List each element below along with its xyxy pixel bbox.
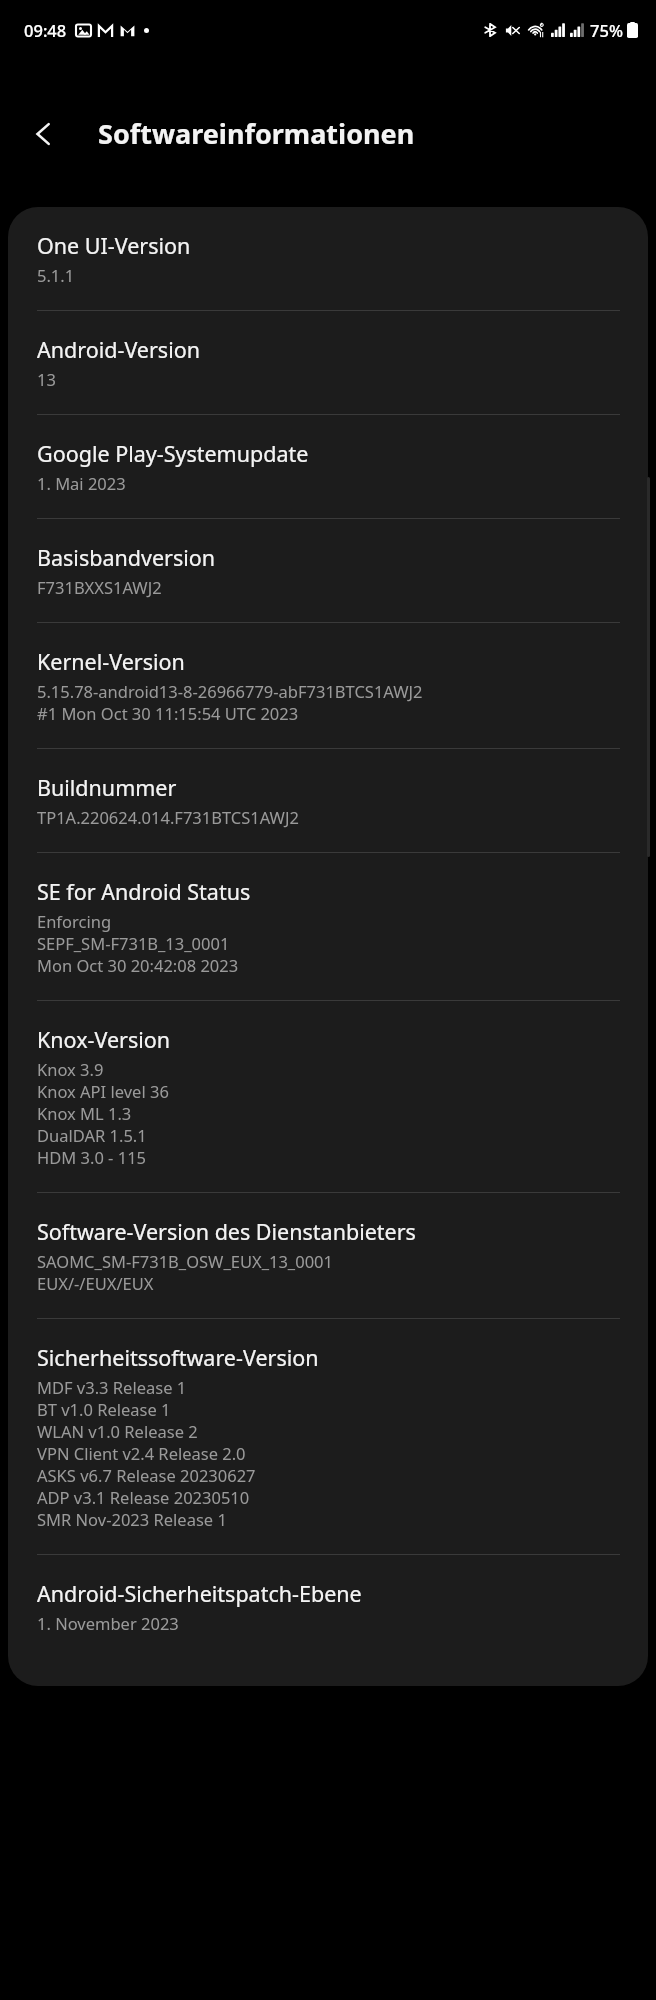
button[interactable]: Basisbandversion	[8, 519, 648, 622]
button[interactable]: Google Play-Systemupdate	[8, 415, 648, 518]
staticText: SE for Android Status	[37, 877, 251, 906]
button[interactable]: SE for Android Status	[8, 853, 648, 1000]
staticText: Buildnummer	[37, 773, 177, 802]
staticText: Sicherheitssoftware-Version	[37, 1343, 319, 1372]
button[interactable]: Kernel-Version	[8, 623, 648, 748]
button[interactable]: Android-Sicherheitspatch-Ebene	[8, 1555, 648, 1658]
staticText: Enforcing	[37, 910, 112, 932]
button[interactable]: Android-Version	[8, 311, 648, 414]
staticText: Knox 3.9	[37, 1058, 104, 1080]
staticText: MDF v3.3 Release 1	[37, 1376, 187, 1398]
button[interactable]: Knox-Version	[8, 1001, 648, 1192]
staticText: BT v1.0 Release 1	[37, 1398, 171, 1420]
staticText: DualDAR 1.5.1	[37, 1124, 147, 1146]
staticText: SMR Nov-2023 Release 1	[37, 1508, 227, 1530]
staticText: 5.15.78-android13-8-26966779-abF731BTCS1…	[37, 680, 423, 702]
staticText: Knox API level 36	[37, 1080, 169, 1102]
button[interactable]: Buildnummer	[8, 749, 648, 852]
staticText: One UI-Version	[37, 231, 191, 260]
staticText: 13	[37, 368, 56, 390]
staticText: Software-Version des Dienstanbieters	[37, 1217, 416, 1246]
staticText: VPN Client v2.4 Release 2.0	[37, 1442, 246, 1464]
staticText: EUX/-/EUX/EUX	[37, 1272, 154, 1294]
button[interactable]: Software-Version des Dienstanbieters	[8, 1193, 648, 1318]
staticText: Android-Sicherheitspatch-Ebene	[37, 1579, 362, 1608]
staticText: F731BXXS1AWJ2	[37, 576, 162, 598]
staticText: TP1A.220624.014.F731BTCS1AWJ2	[37, 806, 299, 828]
staticText: 75%	[590, 19, 623, 41]
staticText: Kernel-Version	[37, 647, 185, 676]
button[interactable]: One UI-Version	[8, 207, 648, 310]
staticText: Android-Version	[37, 335, 201, 364]
staticText: Basisbandversion	[37, 543, 216, 572]
staticText: #1 Mon Oct 30 11:15:54 UTC 2023	[37, 702, 299, 724]
staticText: 09:48	[24, 19, 67, 41]
staticText: Google Play-Systemupdate	[37, 439, 309, 468]
staticText: Knox-Version	[37, 1025, 171, 1054]
button[interactable]: Sicherheitssoftware-Version	[8, 1319, 648, 1554]
staticText: 5.1.1	[37, 264, 75, 286]
staticText: 1. Mai 2023	[37, 472, 126, 494]
staticText: WLAN v1.0 Release 2	[37, 1420, 198, 1442]
staticText: Softwareinformationen	[98, 115, 415, 152]
staticText: Knox ML 1.3	[37, 1102, 132, 1124]
staticText: ADP v3.1 Release 20230510	[37, 1486, 250, 1508]
staticText: 1. November 2023	[37, 1612, 179, 1634]
staticText: SEPF_SM-F731B_13_0001	[37, 932, 230, 954]
button[interactable]: Zurück	[16, 106, 72, 162]
staticText: HDM 3.0 - 115	[37, 1146, 147, 1168]
staticText: ASKS v6.7 Release 20230627	[37, 1464, 256, 1486]
staticText: Mon Oct 30 20:42:08 2023	[37, 954, 239, 976]
staticText: SAOMC_SM-F731B_OSW_EUX_13_0001	[37, 1250, 333, 1272]
